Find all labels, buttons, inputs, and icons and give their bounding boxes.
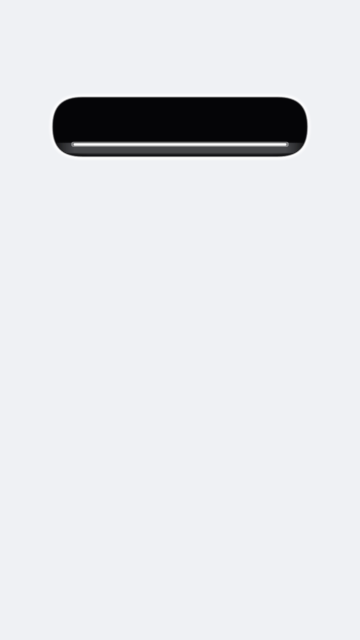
button[interactable]: Card (53, 98, 307, 156)
